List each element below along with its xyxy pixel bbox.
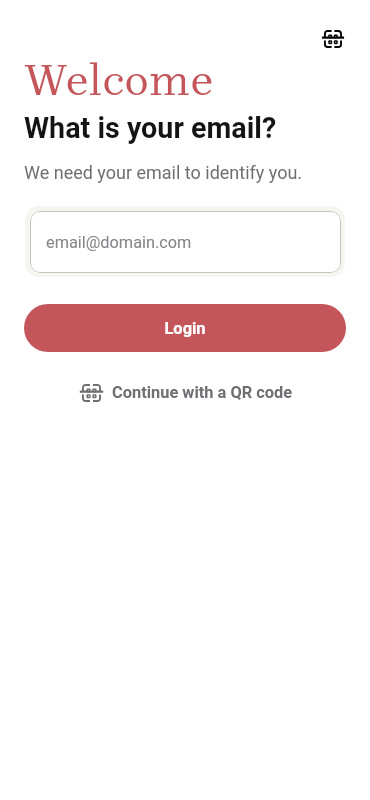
staticText: What is your email? — [24, 111, 277, 145]
button[interactable]: Scan QR code — [313, 19, 353, 59]
staticText: email@domain.com — [46, 233, 192, 252]
button[interactable]: Login — [24, 304, 346, 352]
button[interactable]: email@domain.com — [30, 211, 341, 273]
staticText: Login — [164, 319, 206, 338]
staticText: We need your email to identify you. — [24, 162, 303, 183]
button[interactable]: Continue with a QR code — [78, 379, 297, 406]
staticText: Welcome — [24, 55, 214, 106]
staticText: Continue with a QR code — [112, 383, 293, 402]
